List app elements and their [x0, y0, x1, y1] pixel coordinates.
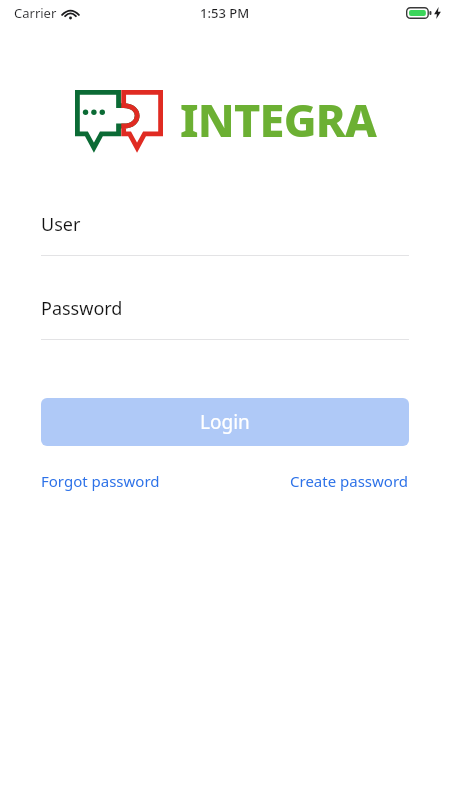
staticText: INTEGRA	[180, 89, 376, 150]
staticText: Carrier	[14, 4, 57, 22]
staticText: 1:53 PM	[200, 4, 250, 22]
staticText: Create password	[290, 471, 409, 491]
button[interactable]: Forgot password	[41, 471, 160, 491]
button[interactable]: Login	[41, 398, 409, 446]
button[interactable]: User	[41, 212, 409, 256]
staticText: Forgot password	[41, 471, 160, 491]
staticText: Login	[200, 409, 250, 435]
button[interactable]: Password	[41, 296, 409, 340]
staticText: Password	[41, 296, 123, 321]
button[interactable]: Create password	[290, 471, 409, 491]
staticText: User	[41, 212, 81, 237]
